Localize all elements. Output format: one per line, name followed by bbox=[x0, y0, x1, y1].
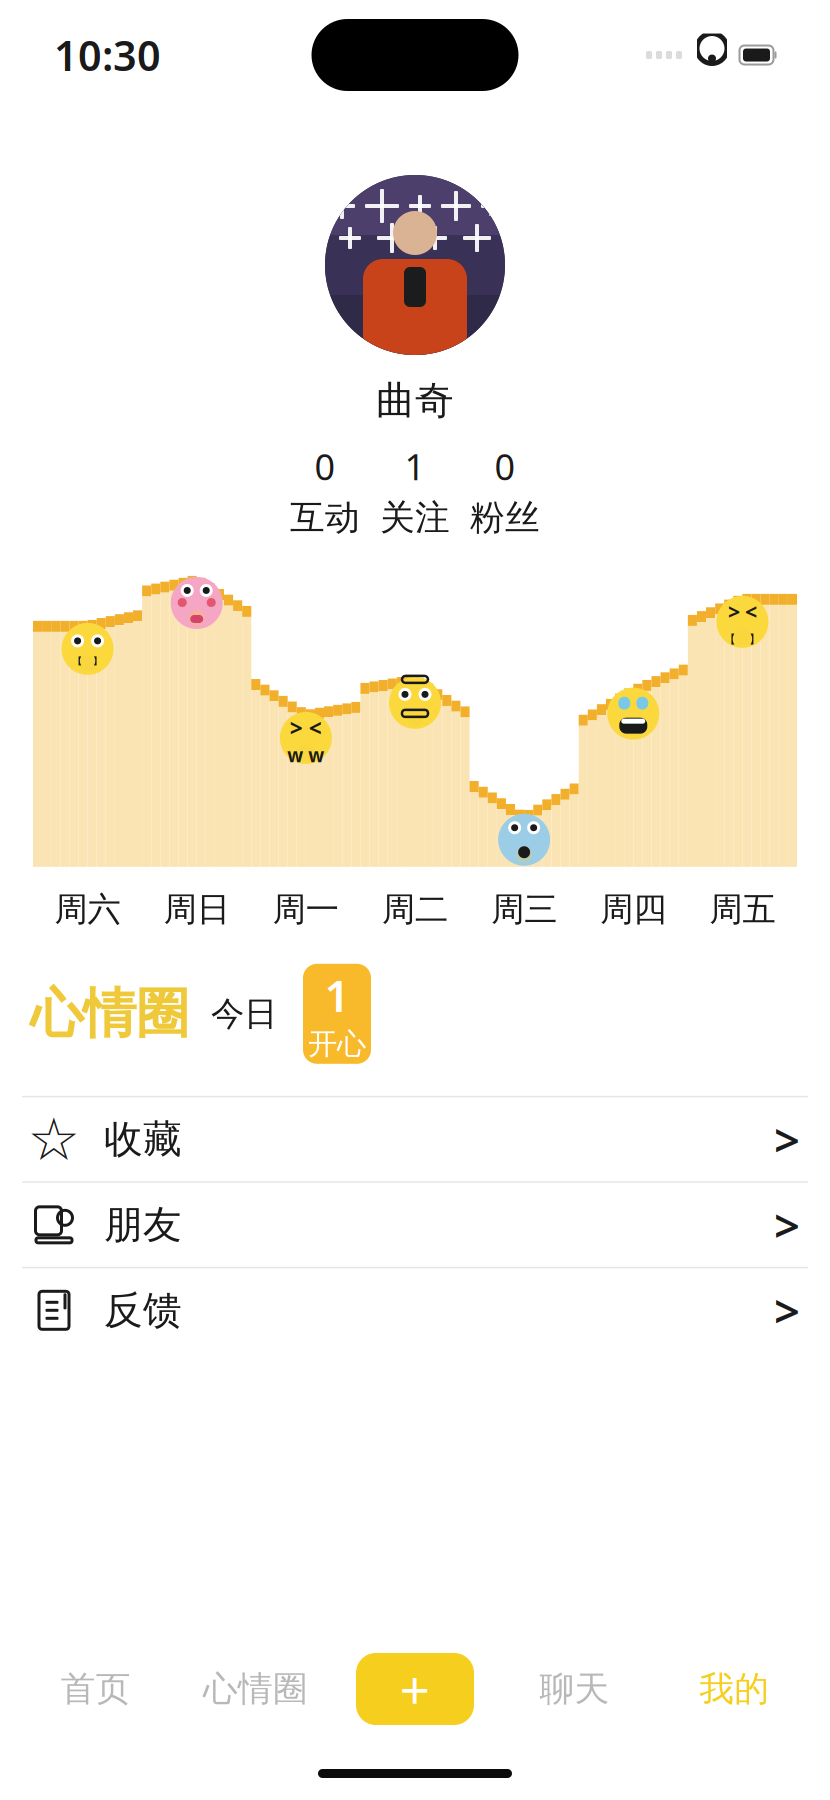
staticText: > bbox=[728, 597, 740, 625]
staticText: 粉丝 bbox=[470, 496, 540, 539]
button[interactable]: 我的 bbox=[654, 1637, 814, 1741]
button[interactable]: 朋友 bbox=[0, 1183, 830, 1267]
button[interactable]: 头像 bbox=[325, 110, 505, 355]
button[interactable]: 0 bbox=[280, 442, 370, 539]
button[interactable]: 1 bbox=[303, 964, 371, 1064]
staticText: 1 bbox=[404, 442, 425, 490]
button[interactable]: 反馈 bbox=[0, 1268, 830, 1352]
staticText: 周二 bbox=[382, 889, 448, 930]
button[interactable]: 0 bbox=[460, 442, 550, 539]
staticText: 心情圈 bbox=[30, 981, 189, 1047]
staticText: < bbox=[745, 597, 757, 625]
staticText: 曲奇 bbox=[376, 377, 454, 424]
button[interactable]: 新建 bbox=[335, 1653, 495, 1725]
staticText: 0 bbox=[314, 442, 335, 490]
staticText: ★ bbox=[27, 1106, 80, 1173]
button[interactable]: ★ bbox=[0, 1097, 830, 1181]
staticText: 朋友 bbox=[104, 1201, 182, 1249]
staticText: 周日 bbox=[164, 889, 230, 930]
staticText: 我的 bbox=[699, 1668, 769, 1710]
staticText: < bbox=[309, 712, 322, 743]
staticText: 周四 bbox=[600, 889, 666, 930]
staticText: 收藏 bbox=[104, 1116, 182, 1163]
staticText: > bbox=[774, 1195, 800, 1255]
staticText: 周六 bbox=[55, 889, 121, 930]
staticText: 聊天 bbox=[540, 1668, 610, 1710]
button[interactable]: 心情圈 bbox=[176, 1637, 335, 1741]
staticText: ☆ bbox=[27, 1106, 80, 1173]
staticText: 周一 bbox=[273, 889, 339, 930]
staticText: > bbox=[290, 712, 303, 743]
staticText: 0 bbox=[494, 442, 515, 490]
staticText: 周三 bbox=[491, 889, 557, 930]
staticText: > bbox=[774, 1109, 800, 1169]
staticText: 心情圈 bbox=[203, 1668, 308, 1710]
staticText: > bbox=[774, 1280, 800, 1340]
staticText: 首页 bbox=[61, 1668, 131, 1710]
staticText: 周五 bbox=[709, 889, 775, 930]
staticText: 反馈 bbox=[104, 1287, 182, 1334]
staticText: 1 bbox=[324, 966, 349, 1024]
staticText: 互动 bbox=[290, 496, 360, 539]
staticText: 10:30 bbox=[54, 28, 161, 82]
staticText: 今日 bbox=[211, 993, 277, 1034]
staticText: + bbox=[399, 1654, 430, 1724]
button[interactable]: 心情圈 bbox=[30, 981, 189, 1047]
button[interactable]: 首页 bbox=[16, 1637, 176, 1741]
button[interactable]: 聊天 bbox=[495, 1637, 654, 1741]
staticText: 开心 bbox=[308, 1026, 366, 1062]
staticText: 关注 bbox=[380, 496, 450, 539]
button[interactable]: 1 bbox=[370, 442, 460, 539]
staticText: w w bbox=[287, 743, 324, 767]
